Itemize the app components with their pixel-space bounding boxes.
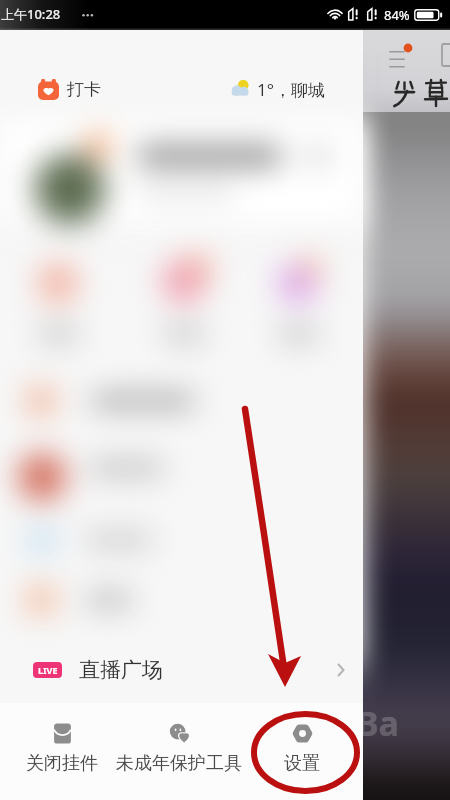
staticText: 84% <box>384 6 410 24</box>
button[interactable]: Settings <box>247 717 357 789</box>
staticText: 上午10:28 <box>1 5 61 23</box>
staticText: 未成年保护工具 <box>116 752 242 775</box>
staticText: 1°，聊城 <box>257 78 325 101</box>
button[interactable]: LIVE <box>0 644 363 696</box>
staticText: 直播广场 <box>79 657 163 683</box>
staticText: Ba <box>356 700 399 746</box>
button[interactable]: Close widget <box>0 717 127 789</box>
staticText: 关闭挂件 <box>26 752 98 775</box>
button[interactable]: 打卡 <box>32 70 107 108</box>
staticText: 打卡 <box>67 79 101 100</box>
button[interactable]: 1°，聊城 <box>226 70 329 108</box>
staticText: 设置 <box>284 752 320 775</box>
button[interactable]: Minor protection tools <box>114 717 244 789</box>
staticText: LIVE <box>38 664 58 676</box>
